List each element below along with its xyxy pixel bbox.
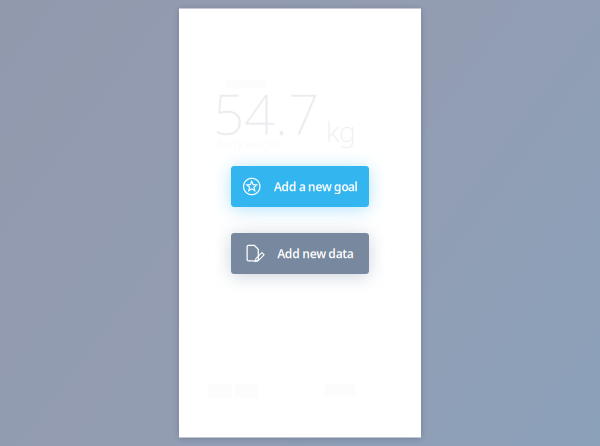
button[interactable]: Add a new goal <box>231 166 369 207</box>
staticText: Add a new goal <box>274 178 357 194</box>
staticText: Add new data <box>277 245 354 261</box>
button[interactable]: Add new data <box>231 233 369 274</box>
staticText: 54.7 <box>213 77 319 150</box>
staticText: kg <box>326 113 356 150</box>
